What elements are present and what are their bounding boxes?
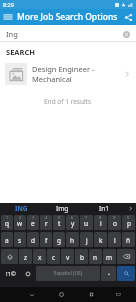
staticText: c <box>52 253 56 262</box>
button[interactable]: Search <box>117 266 135 281</box>
staticText: Ing <box>6 29 18 39</box>
button[interactable]: Recent apps <box>76 287 106 302</box>
staticText: Design Engineer - <box>32 64 95 74</box>
button[interactable]: 6 <box>66 215 79 230</box>
button[interactable]: f <box>40 232 52 247</box>
button[interactable]: 4 <box>40 215 52 230</box>
button[interactable]: 0 <box>122 215 135 230</box>
staticText: q <box>5 219 9 228</box>
button[interactable]: Keyboard settings <box>21 266 35 281</box>
button[interactable]: Clear search <box>121 29 131 39</box>
button[interactable]: Shift <box>1 249 18 264</box>
staticText: 7 <box>85 215 88 220</box>
button[interactable]: In1 <box>83 203 124 214</box>
button[interactable]: b <box>75 249 88 264</box>
staticText: w <box>17 219 23 228</box>
staticText: b <box>80 253 84 262</box>
staticText: d <box>31 236 35 245</box>
button[interactable]: Share <box>120 9 136 25</box>
button[interactable]: m <box>103 249 116 264</box>
button[interactable]: Español (US) <box>36 266 100 281</box>
staticText: More Job Search Options <box>17 11 120 23</box>
staticText: o <box>113 219 117 228</box>
staticText: e <box>31 219 35 228</box>
button[interactable]: s <box>14 232 26 247</box>
staticText: v <box>66 253 70 262</box>
staticText: r <box>45 219 48 228</box>
staticText: . <box>108 268 110 278</box>
button[interactable]: 9 <box>108 215 121 230</box>
staticText: j <box>86 236 88 245</box>
button[interactable]: d <box>27 232 39 247</box>
staticText: h <box>70 236 75 245</box>
button[interactable]: Home <box>46 287 76 302</box>
button[interactable]: 1 <box>1 215 13 230</box>
staticText: 0 <box>127 215 130 220</box>
button[interactable]: . <box>101 266 116 281</box>
staticText: 1 <box>6 215 9 220</box>
button[interactable]: ING <box>0 203 42 214</box>
staticText: s <box>18 236 22 245</box>
button[interactable]: h <box>66 232 79 247</box>
staticText: i <box>100 219 102 228</box>
staticText: k <box>99 236 103 245</box>
button[interactable]: j <box>80 232 93 247</box>
staticText: m <box>106 253 113 262</box>
staticText: 8:29 <box>3 1 14 8</box>
staticText: ING <box>15 204 28 213</box>
staticText: n <box>93 253 98 262</box>
staticText: Img <box>56 204 69 213</box>
staticText: t <box>58 219 61 228</box>
staticText: z <box>24 253 28 262</box>
button[interactable]: Design Engineer - <box>0 59 136 89</box>
button[interactable]: k <box>94 232 107 247</box>
staticText: x <box>38 253 42 262</box>
staticText: l <box>114 236 116 245</box>
button[interactable]: 8 <box>94 215 107 230</box>
staticText: SEARCH <box>6 47 35 57</box>
staticText: Español (US) <box>54 270 82 277</box>
button[interactable]: g <box>53 232 65 247</box>
button[interactable]: 3 <box>27 215 39 230</box>
staticText: f <box>45 236 48 245</box>
button[interactable]: Back <box>17 287 46 302</box>
button[interactable]: Backspace <box>117 249 135 264</box>
button[interactable]: Img <box>42 203 83 214</box>
button[interactable]: 7 <box>80 215 93 230</box>
button[interactable]: l <box>108 232 121 247</box>
button[interactable]: x <box>33 249 46 264</box>
button[interactable]: n <box>89 249 102 264</box>
button[interactable]: Ing <box>0 25 136 42</box>
staticText: Mechanical <box>32 74 72 84</box>
staticText: p <box>127 219 131 228</box>
staticText: y <box>71 219 75 228</box>
button[interactable]: Hide keyboard <box>106 287 130 302</box>
button[interactable]: ñ <box>122 232 135 247</box>
staticText: 6 <box>71 215 74 220</box>
button[interactable]: More suggestions <box>124 203 136 214</box>
button[interactable]: z <box>19 249 32 264</box>
staticText: In1 <box>99 204 109 213</box>
staticText: 2 <box>19 215 22 220</box>
staticText: 9 <box>113 215 116 220</box>
button[interactable]: !1© <box>1 266 20 281</box>
staticText: End of 1 results <box>44 97 92 106</box>
staticText: 3 <box>32 215 35 220</box>
staticText: u <box>84 219 89 228</box>
staticText: ñ <box>126 236 131 245</box>
button[interactable]: Open navigation menu <box>0 9 16 25</box>
button[interactable]: a <box>1 232 13 247</box>
button[interactable]: 2 <box>14 215 26 230</box>
staticText: 5 <box>58 215 61 220</box>
staticText: 4 <box>45 215 48 220</box>
staticText: 8 <box>99 215 102 220</box>
staticText: g <box>57 236 61 245</box>
staticText: a <box>5 236 9 245</box>
button[interactable]: v <box>61 249 74 264</box>
staticText: !1© <box>6 270 16 278</box>
button[interactable]: 5 <box>53 215 65 230</box>
button[interactable]: c <box>47 249 60 264</box>
